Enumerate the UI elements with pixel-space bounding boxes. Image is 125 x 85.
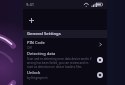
button[interactable]: Add (27, 16, 35, 24)
staticText: Unlock (27, 70, 41, 75)
button[interactable]: Toggle Detecting data (96, 56, 104, 64)
button[interactable]: Detecting data (23, 51, 107, 68)
staticText: by fingerprint (27, 76, 48, 80)
staticText: Detecting data (27, 51, 56, 56)
staticText: PIN Code (27, 40, 45, 45)
staticText: Off (27, 46, 32, 50)
button[interactable]: Unlock (23, 68, 107, 82)
staticText: Scan and re-detecting once data device w… (27, 57, 93, 68)
staticText: General Settings (27, 31, 61, 37)
button[interactable]: Toggle Unlock (96, 71, 104, 79)
button[interactable]: Open PIN Code (97, 41, 104, 48)
staticText: 9:41 (26, 2, 34, 7)
button[interactable]: PIN Code (23, 38, 107, 51)
